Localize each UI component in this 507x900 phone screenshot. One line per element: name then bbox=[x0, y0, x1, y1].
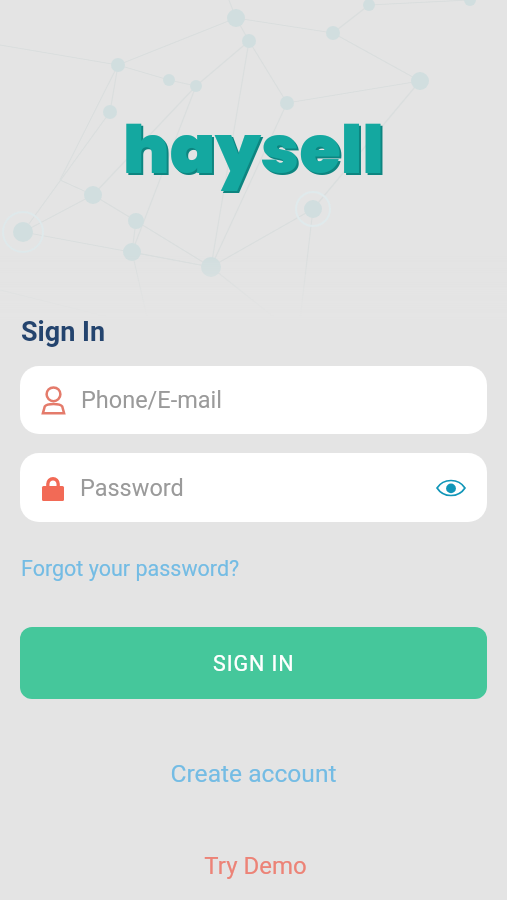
staticText: Phone/E-mail bbox=[81, 386, 222, 414]
button[interactable]: Phone/E-mail bbox=[20, 366, 487, 434]
button[interactable]: Forgot your password? bbox=[21, 556, 240, 581]
staticText: haysell bbox=[123, 103, 384, 197]
staticText: Sign In bbox=[21, 316, 106, 348]
button[interactable]: Try Demo bbox=[2, 852, 507, 880]
staticText: SIGN IN bbox=[213, 651, 295, 676]
staticText: haysell bbox=[125, 105, 386, 199]
button[interactable]: Show password bbox=[433, 470, 469, 506]
staticText: Password bbox=[80, 474, 433, 502]
button[interactable]: SIGN IN bbox=[20, 627, 487, 699]
button[interactable]: Password bbox=[20, 453, 487, 522]
button[interactable]: Create account bbox=[0, 759, 507, 788]
